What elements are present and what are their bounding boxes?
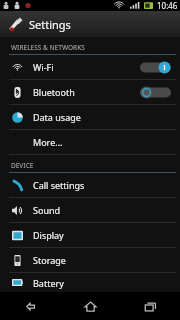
button[interactable]: Data usage [0,105,180,129]
button[interactable]: Storage [0,248,180,272]
staticText: Storage [33,254,66,266]
staticText: More... [33,136,63,148]
staticText: Battery [33,277,64,289]
button[interactable]: Recent apps [135,292,165,320]
button[interactable]: Home [75,292,105,320]
button[interactable]: Battery [0,273,180,292]
staticText: Display [33,229,64,241]
staticText: Bluetooth [33,86,75,98]
staticText: Sound [33,204,61,216]
button[interactable]: Sound [0,198,180,222]
button[interactable]: Bluetooth [0,80,180,104]
button[interactable]: Back [15,292,45,320]
button[interactable]: More... [0,130,180,154]
staticText: WIRELESS & NETWORKS [11,43,85,52]
staticText: Settings [29,17,71,32]
staticText: Wi-Fi [33,61,54,73]
staticText: DEVICE [11,161,34,170]
button[interactable]: Display [0,223,180,247]
button[interactable]: Call settings [0,173,180,197]
staticText: Call settings [33,179,85,191]
staticText: Data usage [33,111,81,123]
staticText: 10:46 [157,0,178,11]
button[interactable]: Wi-Fi [0,55,180,79]
